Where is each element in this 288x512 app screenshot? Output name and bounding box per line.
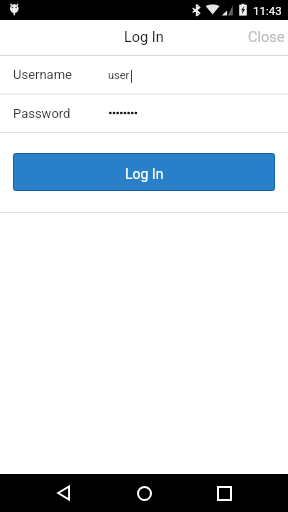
- button[interactable]: Close: [243, 21, 288, 54]
- button[interactable]: Back: [40, 474, 88, 512]
- button[interactable]: Home: [120, 474, 168, 512]
- staticText: 11:43: [253, 4, 282, 17]
- staticText: Close: [248, 29, 285, 46]
- button[interactable]: Recents: [200, 474, 248, 512]
- staticText: Log In: [124, 29, 164, 46]
- button[interactable]: Username: [0, 55, 288, 94]
- button[interactable]: Log In: [14, 154, 274, 190]
- staticText: Log In: [125, 166, 164, 182]
- staticText: Password: [13, 106, 71, 121]
- button[interactable]: Password: [0, 94, 288, 133]
- staticText: Username: [13, 67, 72, 82]
- staticText: user: [108, 69, 130, 82]
